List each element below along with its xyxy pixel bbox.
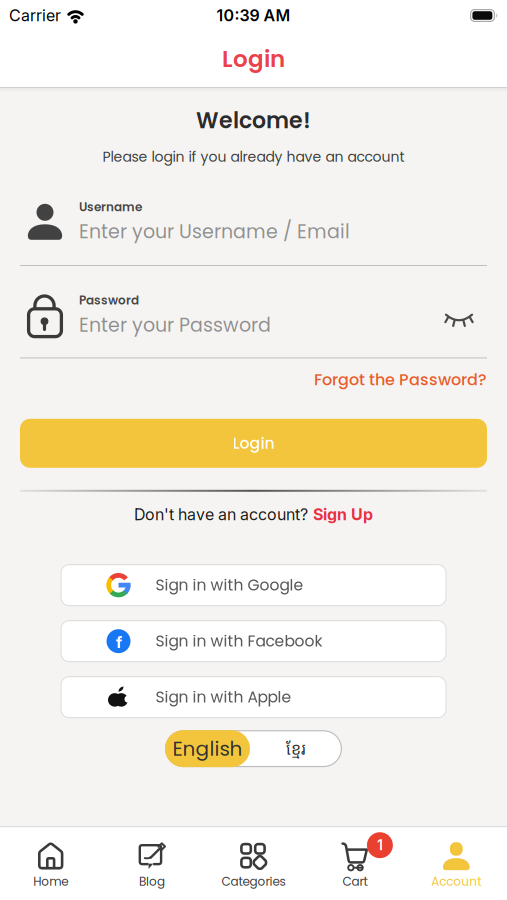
button[interactable]: Account xyxy=(406,841,507,890)
staticText: f xyxy=(116,633,122,652)
staticText: Home xyxy=(33,873,68,890)
button[interactable]: f xyxy=(60,620,446,662)
button[interactable]: Show password xyxy=(445,308,473,323)
staticText: Don't have an account? xyxy=(134,505,308,524)
staticText: Account xyxy=(431,873,481,890)
staticText: Sign in with Facebook xyxy=(155,630,322,652)
button[interactable]: Sign in with Apple xyxy=(60,676,446,718)
staticText: Enter your Password xyxy=(79,312,271,338)
staticText: Blog xyxy=(139,873,165,890)
staticText: Enter your Username / Email xyxy=(79,218,350,245)
button[interactable]: Username field xyxy=(20,199,487,266)
button[interactable]: Sign Up xyxy=(313,505,373,524)
staticText: Please login if you already have an acco… xyxy=(102,147,404,167)
button[interactable]: Categories xyxy=(203,841,304,890)
staticText: Forgot the Password? xyxy=(314,368,487,391)
staticText: Sign in with Google xyxy=(155,574,303,596)
button[interactable]: ខ្មែរ xyxy=(250,730,342,767)
button[interactable]: 1 xyxy=(304,841,406,890)
staticText: Login xyxy=(222,43,285,75)
button[interactable]: Login xyxy=(20,419,487,468)
button[interactable]: Forgot the Password? xyxy=(314,368,487,391)
staticText: Cart xyxy=(342,873,367,890)
staticText: Sign Up xyxy=(313,505,373,524)
staticText: Welcome! xyxy=(196,105,311,136)
staticText: Categories xyxy=(221,873,285,890)
staticText: Carrier xyxy=(9,6,61,25)
staticText: English xyxy=(172,735,242,763)
staticText: Login xyxy=(232,432,274,454)
button[interactable]: Sign in with Google xyxy=(60,564,446,606)
button[interactable]: English xyxy=(165,730,250,767)
staticText: ខ្មែរ xyxy=(286,738,306,760)
staticText: Sign in with Apple xyxy=(155,686,291,708)
staticText: Password xyxy=(79,292,139,309)
staticText: 1 xyxy=(377,837,383,854)
staticText: Username xyxy=(79,199,142,215)
button[interactable]: Password field xyxy=(20,292,487,358)
button[interactable]: Home xyxy=(0,841,101,890)
staticText: 10:39 AM xyxy=(216,6,290,25)
button[interactable]: Blog xyxy=(101,841,203,890)
